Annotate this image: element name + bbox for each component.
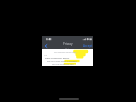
staticText: we only keep what is needed	[47, 60, 77, 63]
staticText: Data collection policy	[45, 56, 70, 59]
staticText: Accept	[83, 44, 93, 48]
staticText: Privacy	[63, 42, 73, 46]
staticText: 1.0	[44, 54, 47, 57]
button[interactable]: Accept	[83, 44, 93, 48]
button[interactable]: Back	[44, 44, 48, 48]
staticText: for the service to run	[52, 63, 74, 66]
staticText: the parties agree that	[54, 51, 77, 54]
staticText: v2.1	[65, 47, 70, 50]
